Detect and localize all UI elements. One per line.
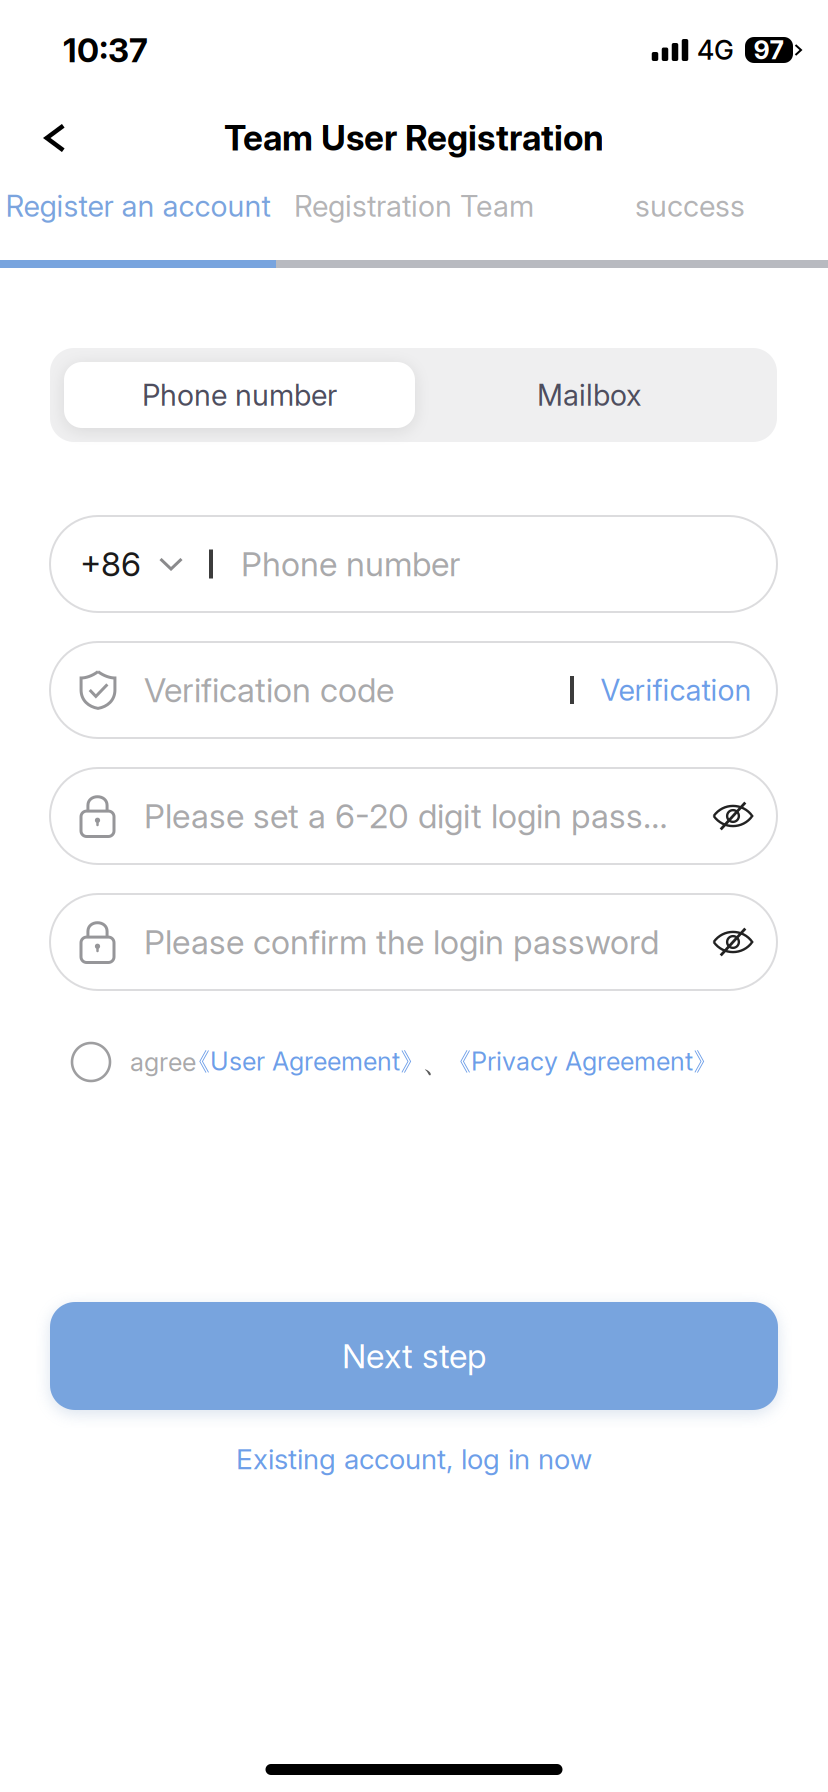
button[interactable]: Register an account: [0, 176, 276, 236]
staticText: Phone number: [241, 544, 460, 584]
staticText: agree: [130, 1047, 196, 1077]
staticText: Team User Registration: [224, 117, 604, 159]
button[interactable]: Mailbox: [415, 362, 763, 428]
staticText: Existing account, log in now: [236, 1442, 592, 1476]
staticText: Phone number: [142, 377, 337, 413]
staticText: 10:37: [63, 30, 148, 70]
staticText: 4G: [697, 34, 734, 66]
staticText: Register an account: [5, 188, 270, 224]
button[interactable]: Show password: [689, 784, 777, 848]
staticText: 《Privacy Agreement》: [446, 1046, 718, 1078]
button[interactable]: Back: [0, 100, 110, 176]
button[interactable]: Phone number: [64, 362, 415, 428]
staticText: +86: [80, 544, 141, 584]
button[interactable]: 《User Agreement》: [185, 1046, 425, 1078]
staticText: Registration Team: [294, 188, 534, 224]
staticText: 97: [753, 35, 784, 65]
staticText: Mailbox: [537, 377, 641, 413]
button[interactable]: Existing account, log in now: [0, 1433, 828, 1485]
staticText: success: [635, 188, 745, 224]
button[interactable]: Show password: [689, 910, 777, 974]
staticText: 《User Agreement》: [185, 1046, 425, 1078]
staticText: Verification code: [144, 670, 394, 710]
button[interactable]: 《Privacy Agreement》: [446, 1046, 718, 1078]
staticText: Verification: [600, 672, 751, 708]
staticText: Next step: [342, 1336, 486, 1376]
button[interactable]: Next step: [50, 1302, 778, 1410]
staticText: Please confirm the login password: [144, 922, 659, 962]
button[interactable]: Verification: [596, 659, 756, 721]
button[interactable]: success: [552, 176, 828, 236]
staticText: 、: [422, 1043, 451, 1080]
staticText: Please set a 6-20 digit login pass…: [144, 796, 668, 836]
button[interactable]: Agree to terms: [72, 1043, 110, 1081]
button[interactable]: Registration Team: [276, 176, 552, 236]
